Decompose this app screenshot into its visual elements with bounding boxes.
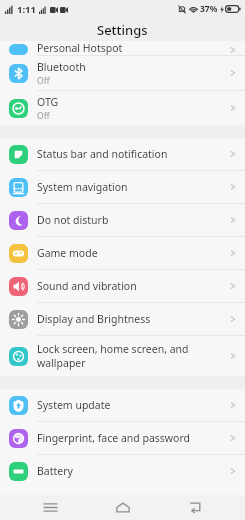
staticText: Bluetooth [37, 60, 86, 74]
staticText: Settings [97, 21, 148, 39]
staticText: Sound and vibration [37, 279, 137, 293]
button[interactable]: Do not disturb [0, 204, 245, 236]
staticText: Off [37, 110, 50, 122]
button[interactable]: System navigation [0, 171, 245, 203]
button[interactable]: Back [172, 495, 218, 520]
button[interactable]: Bluetooth [0, 56, 245, 90]
button[interactable]: Sound and vibration [0, 270, 245, 302]
button[interactable]: Home [100, 495, 146, 520]
staticText: Lock screen, home screen, and wallpaper [37, 342, 226, 370]
button[interactable]: Status bar and notification [0, 138, 245, 170]
staticText: System navigation [37, 180, 128, 194]
staticText: Fingerprint, face and password [37, 431, 191, 445]
button[interactable]: System update [0, 389, 245, 421]
staticText: Display and Brightness [37, 312, 151, 326]
button[interactable]: OTG [0, 91, 245, 125]
staticText: Status bar and notification [37, 147, 168, 161]
button[interactable]: Fingerprint, face and password [0, 422, 245, 454]
button[interactable]: Game mode [0, 237, 245, 269]
staticText: 1:11 [17, 3, 36, 16]
button[interactable]: Personal Hotspot [0, 41, 245, 55]
staticText: Personal Hotspot [37, 41, 123, 55]
staticText: Do not disturb [37, 213, 109, 227]
staticText: Game mode [37, 246, 98, 260]
staticText: 37% [200, 3, 218, 15]
button[interactable]: Recent apps [27, 495, 73, 520]
button[interactable]: Display and Brightness [0, 303, 245, 335]
button[interactable]: Battery [0, 455, 245, 487]
staticText: Battery [37, 464, 73, 478]
staticText: Off [37, 75, 50, 87]
button[interactable]: Lock screen, home screen, and wallpaper [0, 336, 245, 376]
staticText: System update [37, 398, 111, 412]
staticText: OTG [37, 95, 59, 109]
